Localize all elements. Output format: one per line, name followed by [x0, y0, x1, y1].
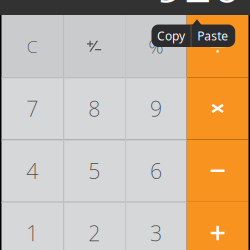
button[interactable]: 2 [63, 202, 125, 250]
button[interactable]: 3 [125, 202, 187, 250]
button[interactable]: 9 [125, 77, 187, 140]
staticText: C [27, 35, 38, 58]
button[interactable]: Plus [187, 202, 249, 250]
button[interactable]: 6 [125, 140, 187, 202]
staticText: % [148, 34, 163, 59]
staticText: 8 [88, 94, 100, 123]
button[interactable]: 4 [1, 140, 63, 202]
button[interactable]: Divide [187, 15, 249, 77]
staticText: 3 [150, 219, 162, 247]
button[interactable]: Minus [187, 140, 249, 202]
button[interactable]: 1 [1, 202, 63, 250]
button[interactable]: 5 [63, 140, 125, 202]
staticText: 6 [150, 157, 162, 185]
staticText: 7 [26, 94, 38, 123]
staticText: Paste [197, 28, 228, 44]
staticText: 2 [88, 219, 100, 247]
button[interactable]: Percent [125, 15, 187, 77]
button[interactable]: Paste [190, 24, 235, 47]
button[interactable]: Copy [151, 24, 190, 47]
staticText: 4 [26, 157, 38, 185]
button[interactable]: 7 [1, 77, 63, 140]
staticText: 9 [150, 94, 162, 123]
staticText: 1 [26, 219, 38, 247]
staticText: Copy [157, 28, 185, 44]
button[interactable]: Clear [1, 15, 63, 77]
button[interactable]: 8 [63, 77, 125, 140]
staticText: 926 [156, 0, 240, 16]
staticText: 5 [88, 157, 100, 185]
button[interactable]: Multiply [187, 77, 249, 140]
button[interactable]: Plus minus [63, 15, 125, 77]
